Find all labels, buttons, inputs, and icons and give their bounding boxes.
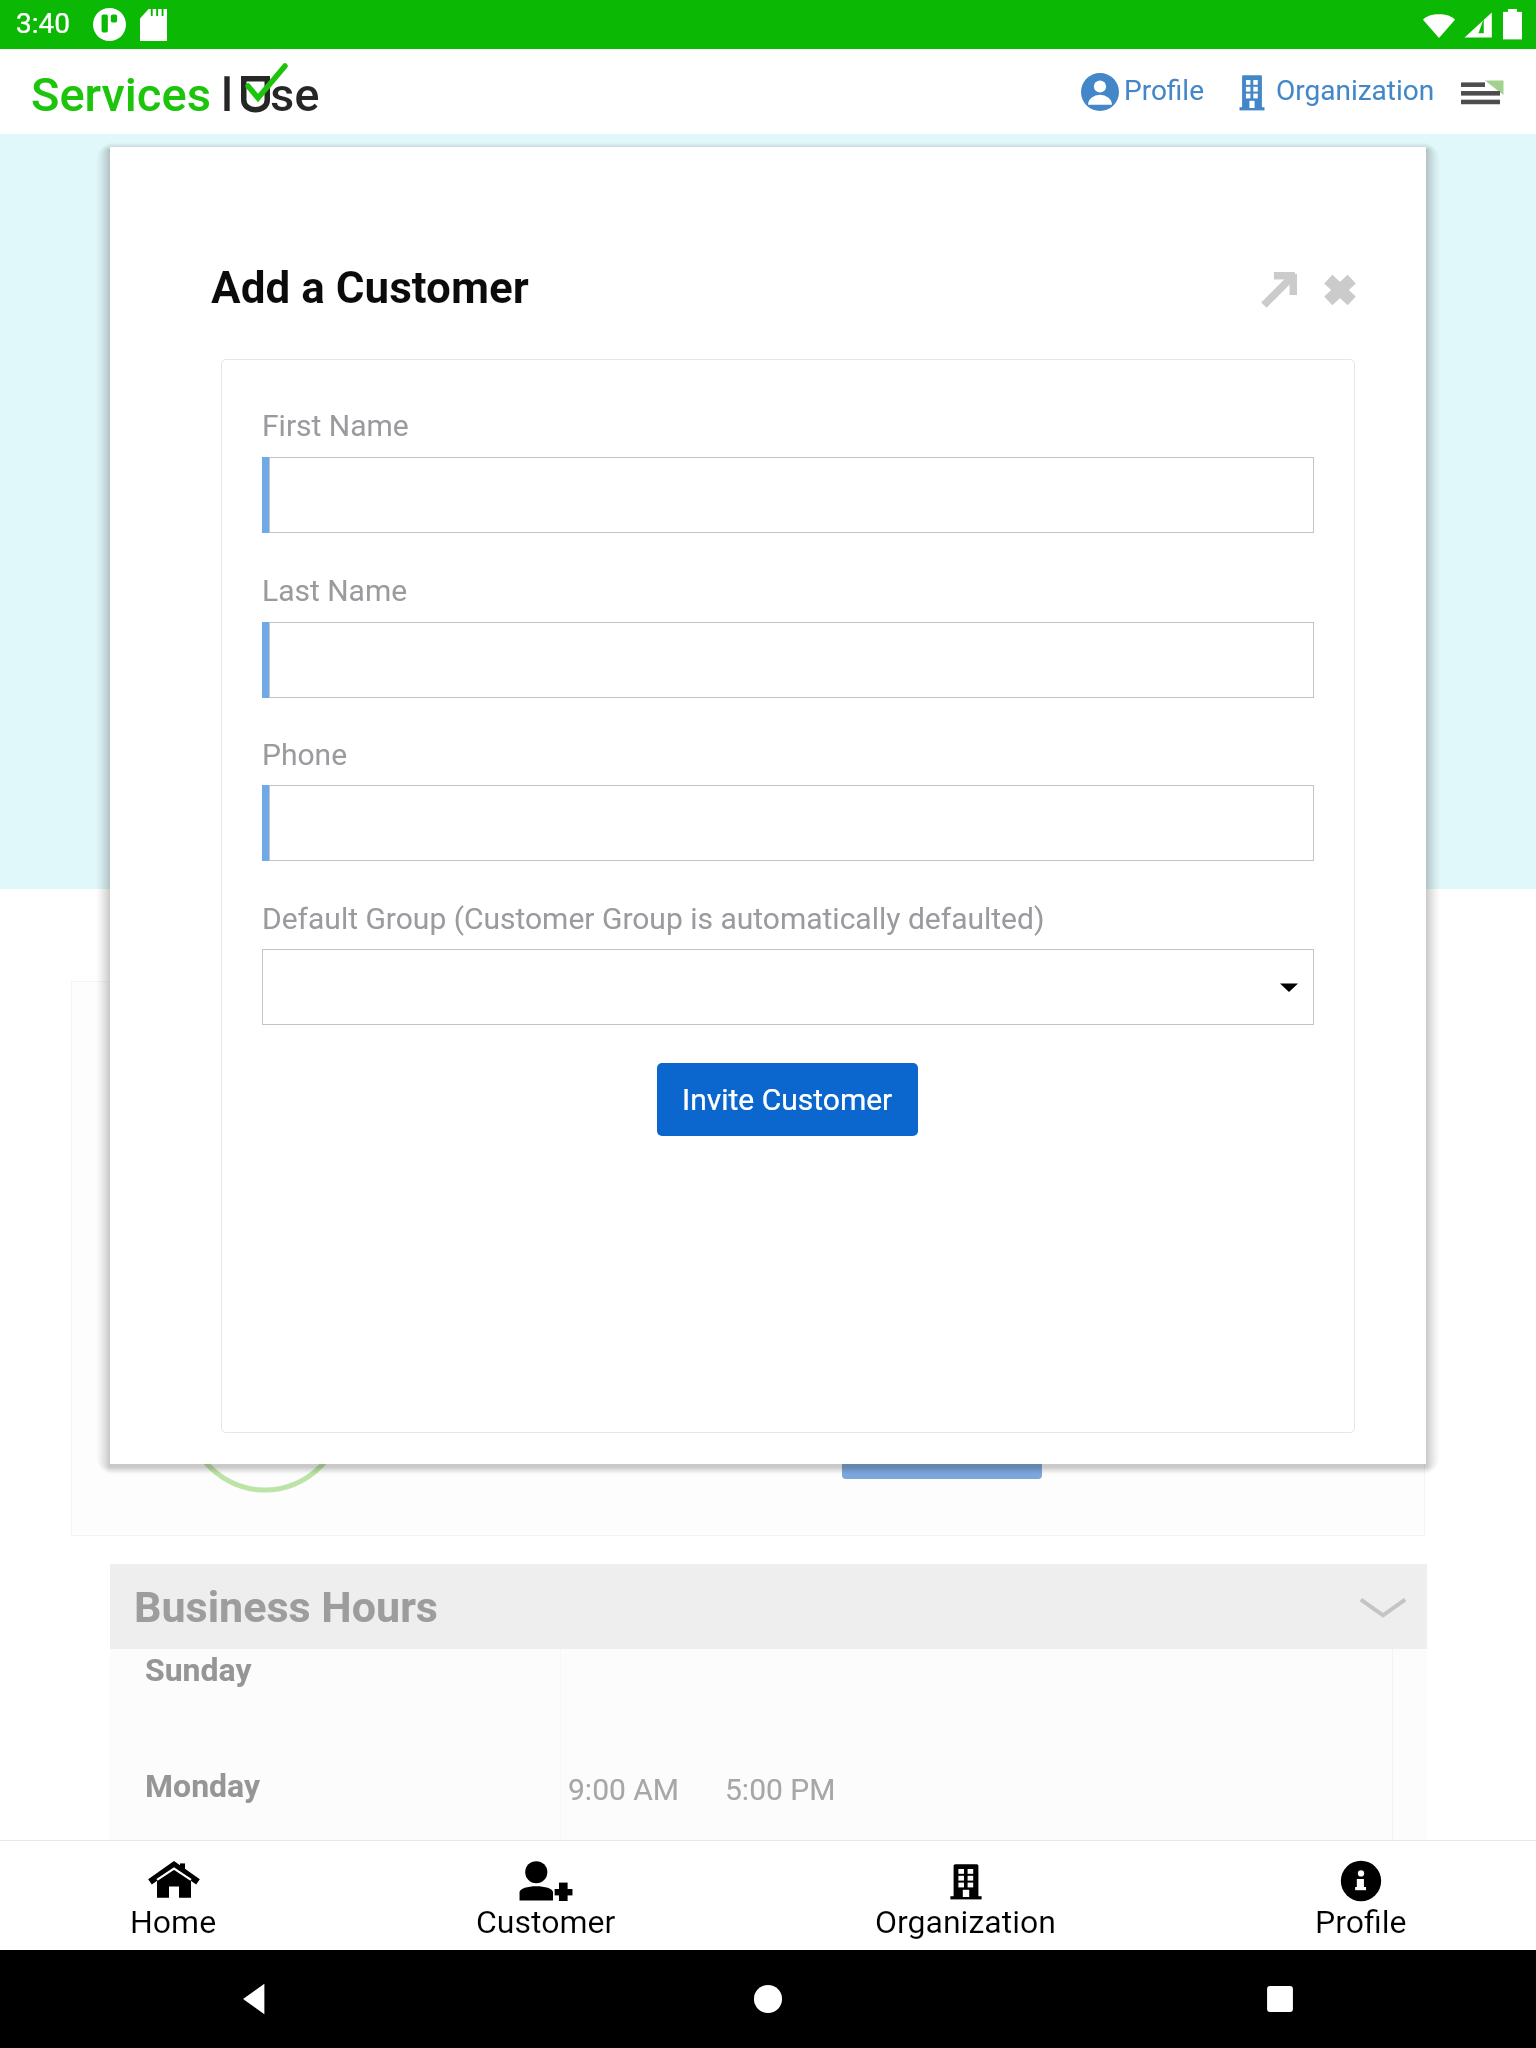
staticText: Monday	[145, 1767, 261, 1805]
staticText: Phone	[262, 737, 348, 772]
button[interactable]: Menu	[1456, 68, 1506, 116]
button[interactable]	[262, 622, 1314, 698]
staticText: Organization	[1276, 74, 1435, 107]
staticText: First Name	[262, 408, 409, 443]
staticText: Profile	[1315, 1903, 1407, 1941]
button[interactable]: Expand	[1258, 269, 1300, 311]
staticText: 9:00 AM	[568, 1772, 680, 1807]
button[interactable]: Organization	[1236, 66, 1435, 118]
button[interactable]: Home	[130, 1840, 217, 1950]
button[interactable]: Business Hours	[110, 1564, 1427, 1649]
staticText: 3:40	[16, 7, 70, 40]
staticText: Customer	[476, 1903, 616, 1941]
button[interactable]	[262, 949, 1314, 1025]
button[interactable]: Organization	[875, 1840, 1056, 1950]
button[interactable]: Profile	[1081, 66, 1205, 118]
staticText: Services	[31, 67, 211, 115]
staticText: 5:00 PM	[725, 1772, 836, 1807]
staticText: Sunday	[145, 1651, 252, 1689]
button[interactable]: Invite Customer	[657, 1063, 918, 1136]
button[interactable]	[262, 457, 1314, 533]
staticText: Business Hours	[134, 1582, 438, 1632]
staticText: l	[221, 67, 234, 115]
staticText: Last Name	[262, 573, 408, 608]
button[interactable]: Profile	[1315, 1840, 1407, 1950]
staticText: Invite Customer	[682, 1082, 893, 1117]
button[interactable]	[262, 785, 1314, 861]
staticText: Home	[130, 1903, 217, 1941]
staticText: se	[270, 67, 320, 115]
button[interactable]: Customer	[476, 1840, 616, 1950]
staticText: Organization	[875, 1903, 1056, 1941]
button[interactable]: Close	[1319, 269, 1361, 311]
staticText: Default Group (Customer Group is automat…	[262, 901, 1045, 936]
staticText: Profile	[1124, 74, 1205, 107]
staticText: Add a Customer	[211, 262, 529, 314]
